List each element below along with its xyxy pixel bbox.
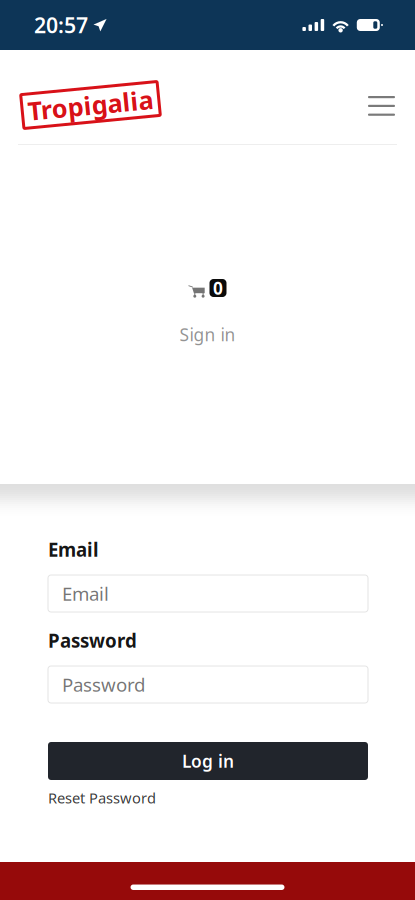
button[interactable]: Menu	[368, 50, 415, 116]
button[interactable]: Sign in	[179, 323, 235, 346]
staticText: Email	[62, 581, 109, 606]
staticText: Email	[48, 537, 99, 562]
staticText: Password	[62, 672, 145, 697]
staticText: Reset Password	[48, 788, 156, 807]
button[interactable]: Password	[48, 666, 368, 703]
staticText: Sign in	[179, 323, 235, 346]
staticText: Log in	[182, 749, 234, 772]
button[interactable]: Cart, 0 items	[188, 279, 226, 298]
button[interactable]: Reset Password	[48, 788, 156, 807]
button[interactable]: Tropigalia home	[0, 50, 159, 122]
button[interactable]: Log in	[48, 742, 368, 780]
staticText: Tropigalia	[27, 88, 153, 122]
button[interactable]: Email	[48, 575, 368, 612]
staticText: 20:57	[34, 11, 88, 39]
staticText: 0	[213, 276, 223, 299]
staticText: Password	[48, 628, 137, 653]
